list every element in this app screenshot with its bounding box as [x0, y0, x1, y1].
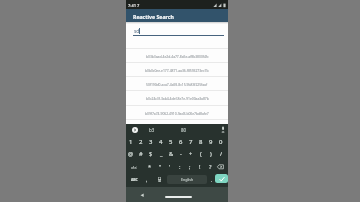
staticText: ; — [189, 163, 191, 171]
staticText: / — [220, 150, 223, 158]
button[interactable]: b3 — [146, 126, 158, 133]
button[interactable] — [126, 9, 228, 22]
staticText: : — [179, 163, 181, 171]
staticText: 3 — [149, 138, 153, 146]
staticText: & — [169, 150, 174, 158]
button[interactable]: - — [176, 149, 186, 159]
button[interactable] — [165, 196, 192, 198]
staticText: _ — [160, 150, 163, 158]
staticText: b0c24c3f-3ab4-4def-8e7e-91e00aa3a87b — [146, 96, 209, 101]
button[interactable]: # — [136, 149, 146, 159]
button[interactable]: . — [208, 174, 216, 184]
button[interactable] — [215, 174, 228, 183]
button[interactable]: + — [186, 149, 196, 159]
button[interactable]: 4 — [156, 137, 166, 147]
button[interactable] — [140, 193, 145, 198]
staticText: English — [181, 177, 194, 182]
button[interactable]: ( — [196, 149, 206, 159]
staticText: 2 — [139, 138, 143, 146]
button[interactable]: , — [142, 174, 152, 184]
staticText: 5 — [169, 138, 173, 146]
staticText: 6 — [179, 138, 183, 146]
button[interactable]: 12 34 — [156, 176, 163, 183]
staticText: =\< — [131, 165, 137, 170]
staticText: @ — [128, 150, 134, 158]
button[interactable]: 1 — [126, 137, 136, 147]
button[interactable]: 3 — [146, 137, 156, 147]
staticText: 80 — [181, 127, 187, 133]
button[interactable]: ABC — [129, 174, 139, 184]
button[interactable]: " — [155, 162, 165, 172]
staticText: ! — [199, 163, 201, 171]
staticText: ' — [169, 163, 171, 171]
button[interactable]: 0 — [216, 137, 226, 147]
staticText: Reactive Search — [133, 13, 174, 20]
staticText: b3 — [149, 127, 155, 133]
button[interactable]: ! — [195, 162, 205, 172]
staticText: * — [148, 163, 152, 171]
staticText: 12 34 — [158, 177, 161, 183]
staticText: 50f190d0-aca7-4a93-8c15-9b83f225faaf — [146, 82, 208, 87]
button[interactable]: 2 — [136, 137, 146, 147]
button[interactable]: 5 — [166, 137, 176, 147]
button[interactable]: * — [145, 162, 155, 172]
button[interactable]: 80 — [178, 126, 190, 133]
button[interactable]: ? — [205, 162, 215, 172]
button[interactable]: : — [175, 162, 185, 172]
button[interactable]: 8 — [196, 137, 206, 147]
button[interactable]: @ — [126, 149, 136, 159]
staticText: . — [211, 176, 213, 183]
button[interactable]: 9 — [206, 137, 216, 147]
button[interactable]: =\< — [129, 162, 139, 172]
button[interactable]: English — [167, 175, 207, 184]
button[interactable] — [217, 164, 224, 170]
staticText: 7:41 7 — [128, 3, 140, 8]
button[interactable]: $ — [146, 149, 156, 159]
staticText: " — [159, 163, 162, 171]
staticText: b0b0c0ee-e177-4871-aa36-f8593273ec7b — [145, 68, 209, 73]
button[interactable]: sd — [134, 27, 154, 35]
staticText: ABC — [131, 177, 138, 182]
staticText: b09f7a74-9062-4910-9ad3-b00e7bd8afe7 — [145, 111, 209, 116]
staticText: + — [189, 150, 193, 158]
staticText: ( — [200, 150, 202, 158]
staticText: 4 — [159, 138, 163, 146]
staticText: # — [139, 150, 143, 158]
staticText: $ — [149, 150, 153, 158]
button[interactable] — [220, 126, 226, 133]
staticText: b03b3aad-4e2d-4a77-8a5e-af8b3800f4fc — [146, 54, 209, 59]
button[interactable]: b0c24c3f-3ab4-4def-8e7e-91e00aa3a87b — [126, 90, 228, 104]
button[interactable]: 50f190d0-aca7-4a93-8c15-9b83f225faaf — [126, 76, 228, 90]
staticText: 0 — [219, 138, 223, 146]
button[interactable]: _ — [156, 149, 166, 159]
button[interactable]: 7 — [186, 137, 196, 147]
button[interactable]: 6 — [176, 137, 186, 147]
button[interactable]: / — [216, 149, 226, 159]
staticText: , — [146, 176, 148, 183]
staticText: ? — [209, 163, 212, 171]
staticText: 7 — [189, 138, 193, 146]
staticText: 1 — [129, 138, 133, 146]
button[interactable] — [132, 127, 138, 133]
button[interactable]: & — [166, 149, 176, 159]
staticText: 9 — [209, 138, 213, 146]
button[interactable]: ; — [185, 162, 195, 172]
staticText: 8 — [199, 138, 203, 146]
button[interactable]: b03b3aad-4e2d-4a77-8a5e-af8b3800f4fc — [126, 48, 228, 62]
staticText: - — [180, 150, 182, 158]
button[interactable]: ' — [165, 162, 175, 172]
button[interactable]: b0b0c0ee-e177-4871-aa36-f8593273ec7b — [126, 62, 228, 76]
staticText: ) — [210, 150, 212, 158]
staticText: sd — [134, 28, 140, 35]
button[interactable]: ) — [206, 149, 216, 159]
button[interactable]: b09f7a74-9062-4910-9ad3-b00e7bd8afe7 — [126, 105, 228, 119]
